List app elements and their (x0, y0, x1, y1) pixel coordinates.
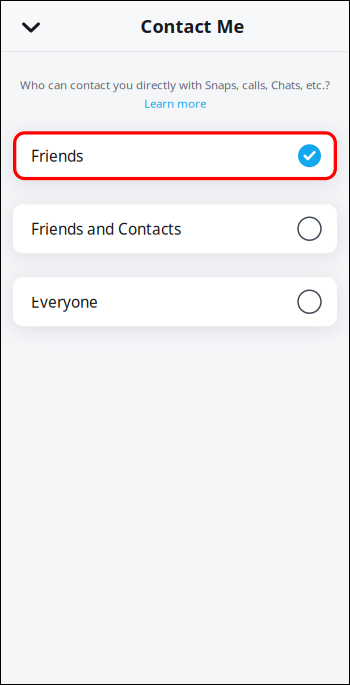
staticText: Everyone (31, 291, 98, 312)
button[interactable]: Back (9, 2, 53, 49)
staticText: Learn more (144, 96, 206, 111)
button[interactable]: Learn more (144, 96, 206, 111)
button[interactable]: Friends (13, 131, 337, 180)
staticText: Who can contact you directly with Snaps,… (20, 77, 330, 93)
button[interactable]: Everyone (13, 277, 337, 326)
staticText: Contact Me (140, 14, 244, 38)
button[interactable]: Friends and Contacts (13, 204, 337, 253)
staticText: Friends (31, 145, 83, 166)
staticText: Friends and Contacts (31, 218, 181, 239)
